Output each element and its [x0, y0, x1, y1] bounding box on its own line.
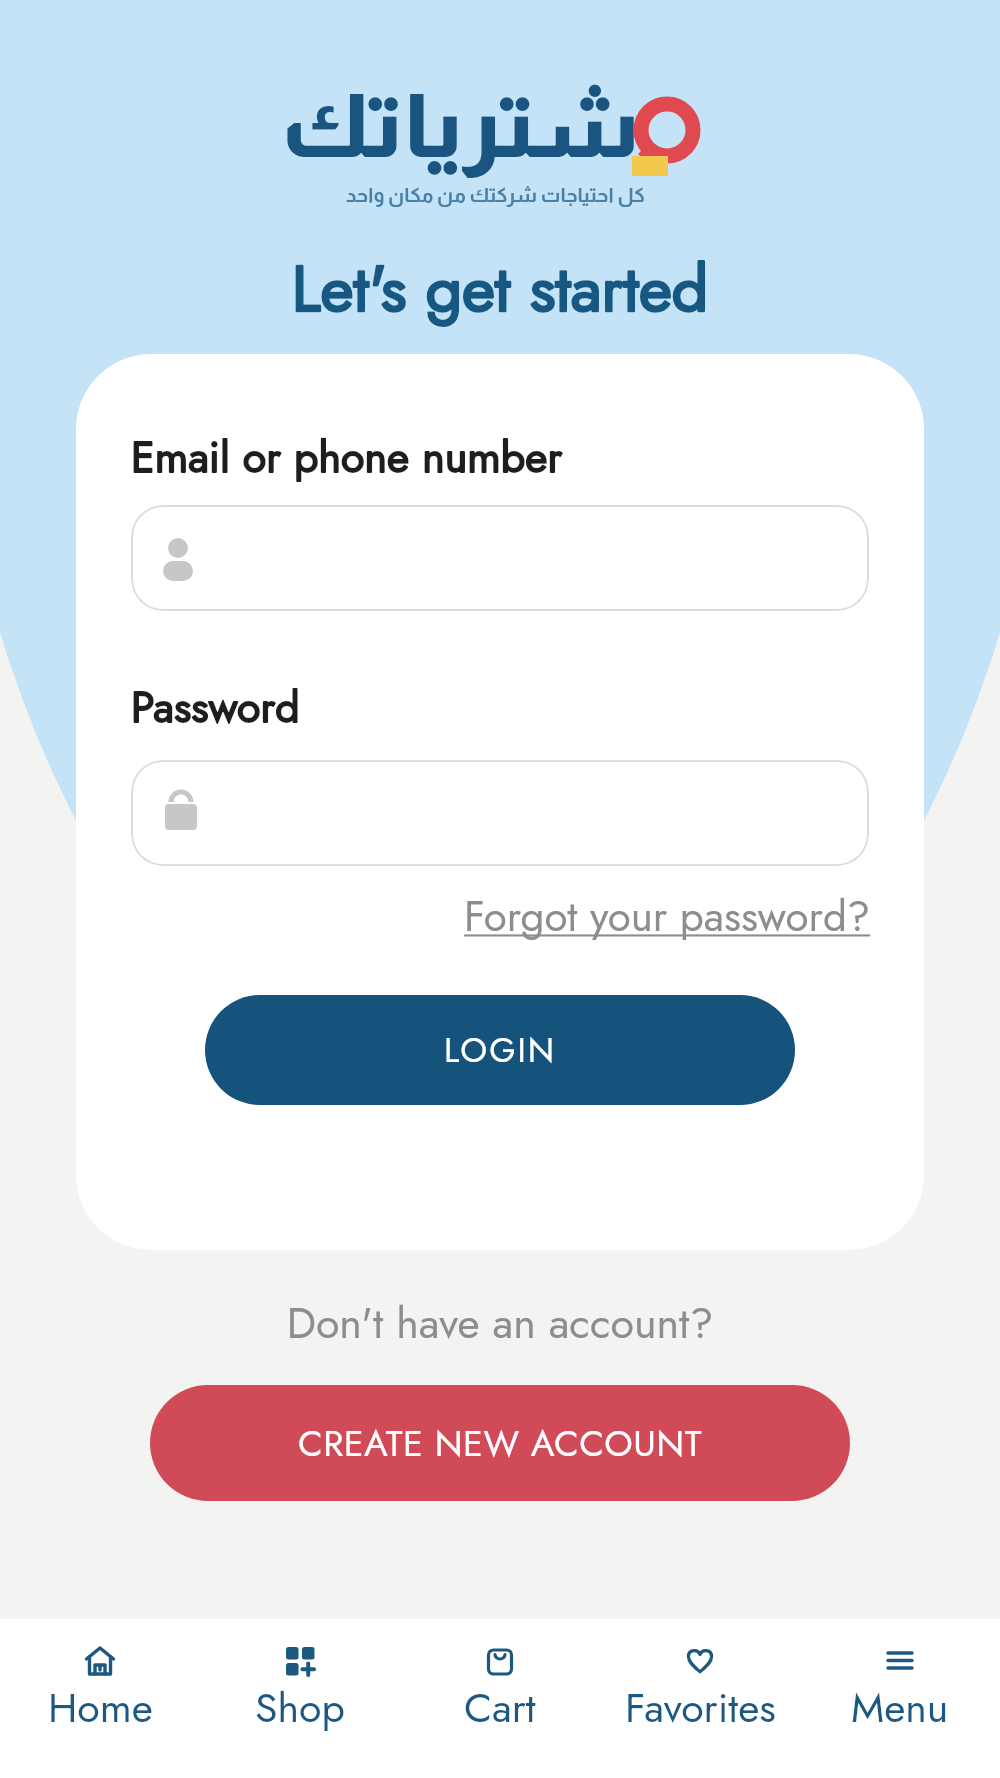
staticText: كل احتياجات شركتك من مكان واحد [245, 184, 645, 206]
button[interactable]: LOGIN [205, 995, 795, 1105]
staticText: Email or phone number [131, 426, 631, 488]
button[interactable]: Forgot your password? [464, 886, 871, 947]
staticText: Don't have an account? [0, 1292, 1000, 1354]
staticText: Home [48, 1678, 153, 1737]
button[interactable]: Menu [800, 1619, 1000, 1778]
staticText: Let's get started [0, 243, 1000, 335]
staticText: Password [131, 676, 631, 738]
button[interactable]: Home [0, 1619, 200, 1778]
staticText: Let's get started [0, 243, 1000, 335]
button[interactable]: Favorites [600, 1619, 800, 1778]
staticText: Cart [464, 1678, 536, 1737]
button[interactable]: Shop [200, 1619, 400, 1778]
staticText: Menu [851, 1678, 949, 1737]
staticText: Password [131, 676, 631, 738]
button[interactable]: CREATE NEW ACCOUNT [150, 1385, 850, 1501]
staticText: LOGIN [444, 1026, 557, 1075]
button[interactable] [131, 505, 869, 611]
staticText: شترياتك [280, 77, 640, 175]
button[interactable] [131, 760, 869, 866]
staticText: Forgot your password? [464, 886, 871, 947]
staticText: Favorites [625, 1678, 776, 1737]
button[interactable]: Cart [400, 1619, 600, 1778]
staticText: CREATE NEW ACCOUNT [298, 1417, 702, 1469]
staticText: Shop [255, 1678, 345, 1737]
staticText: Email or phone number [131, 426, 631, 488]
